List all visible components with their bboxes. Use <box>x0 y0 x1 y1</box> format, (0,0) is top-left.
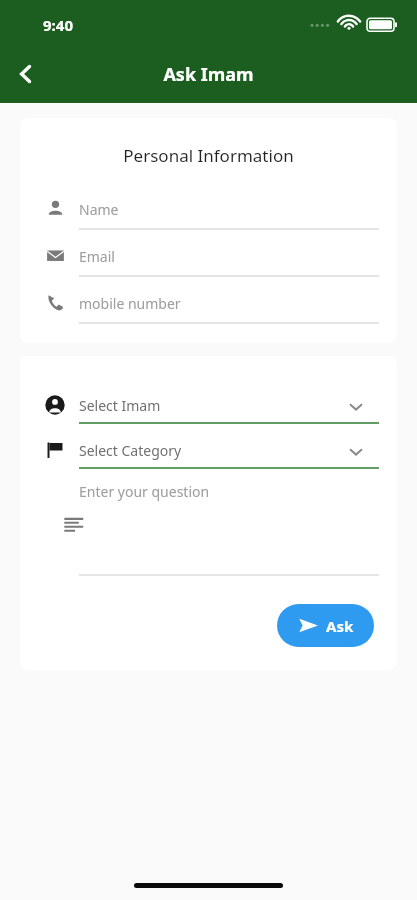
staticText: Email <box>79 247 115 266</box>
button[interactable]: Select Category <box>38 431 379 473</box>
staticText: 9:40 <box>43 15 73 35</box>
button[interactable]: Email <box>38 237 379 281</box>
button[interactable]: Select Imam <box>38 386 379 428</box>
staticText: Select Imam <box>79 396 161 415</box>
staticText: Personal Information <box>20 144 397 167</box>
button[interactable]: Name <box>38 190 379 234</box>
button[interactable]: mobile number <box>38 284 379 328</box>
staticText: Ask <box>326 616 354 636</box>
staticText: Name <box>79 200 119 219</box>
button[interactable]: Ask <box>277 604 374 647</box>
staticText: Select Category <box>79 441 182 460</box>
button[interactable]: Enter your question <box>59 476 379 586</box>
button[interactable]: Back <box>6 54 46 94</box>
staticText: Ask Imam <box>0 62 417 87</box>
staticText: mobile number <box>79 294 181 313</box>
staticText: Enter your question <box>79 482 210 501</box>
